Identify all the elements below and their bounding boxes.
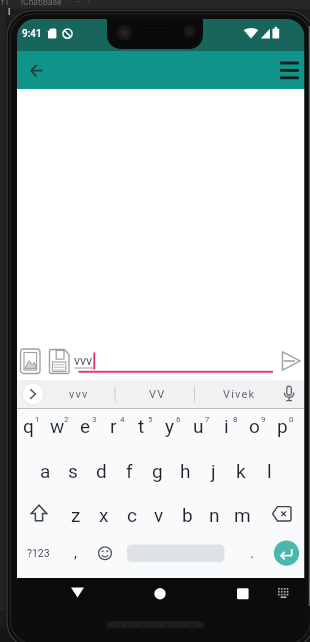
button[interactable]: f — [115, 456, 143, 486]
button[interactable]: m — [228, 500, 256, 530]
button[interactable]: s — [59, 456, 87, 486]
button[interactable]: r — [99, 411, 127, 441]
staticText: b — [182, 504, 193, 526]
button[interactable] — [268, 498, 298, 530]
staticText: r — [110, 415, 117, 437]
staticText: l — [267, 460, 272, 482]
button[interactable]: i — [212, 411, 240, 441]
staticText: 9:41 — [22, 28, 42, 40]
staticText: p — [277, 415, 288, 437]
button[interactable]: y — [155, 411, 183, 441]
button[interactable]: c — [118, 500, 146, 530]
staticText: q — [23, 415, 34, 437]
staticText: h — [180, 460, 191, 482]
button[interactable]: o — [240, 411, 268, 441]
button[interactable]: vvv — [55, 383, 103, 405]
staticText: t — [138, 415, 145, 437]
button[interactable]: p — [268, 411, 296, 441]
button[interactable] — [272, 582, 296, 604]
button[interactable] — [226, 580, 262, 605]
button[interactable] — [18, 345, 43, 375]
button[interactable] — [142, 580, 178, 605]
button[interactable]: x — [90, 500, 118, 530]
button[interactable] — [46, 345, 72, 375]
button[interactable]: k — [227, 456, 255, 486]
button[interactable] — [24, 498, 54, 530]
staticText: e — [80, 415, 91, 437]
staticText: 9 — [261, 415, 266, 424]
staticText: i — [224, 415, 229, 437]
staticText: , — [74, 544, 77, 562]
button[interactable]: n — [200, 500, 228, 530]
button[interactable]: v — [145, 500, 173, 530]
button[interactable]: u — [184, 411, 212, 441]
staticText: a — [40, 460, 51, 482]
staticText: 2 — [64, 415, 69, 424]
button[interactable]: t — [127, 411, 155, 441]
button[interactable]: g — [143, 456, 171, 486]
button[interactable] — [279, 383, 299, 405]
staticText: j — [211, 460, 216, 482]
button[interactable] — [24, 56, 52, 86]
staticText: VV — [149, 388, 166, 401]
button[interactable]: Vivek — [210, 383, 268, 405]
staticText: k — [236, 460, 246, 482]
button[interactable] — [60, 580, 96, 605]
staticText: c — [127, 504, 137, 526]
staticText: vvv — [74, 353, 93, 368]
button[interactable] — [95, 543, 115, 564]
staticText: f — [126, 460, 133, 482]
staticText: . — [250, 544, 254, 562]
staticText: 6 — [176, 415, 181, 424]
staticText: o — [249, 415, 260, 437]
staticText: f i IChat|Base · ·· · — [1, 0, 90, 7]
button[interactable]: d — [87, 456, 115, 486]
button[interactable] — [278, 347, 304, 375]
staticText: w — [50, 415, 65, 437]
staticText: 0 — [289, 415, 294, 424]
button[interactable]: . — [245, 543, 259, 563]
button[interactable]: e — [71, 411, 99, 441]
staticText: g — [152, 460, 163, 482]
staticText: ?123 — [27, 547, 50, 559]
staticText: 7 — [205, 415, 210, 424]
staticText: u — [193, 415, 204, 437]
staticText: z — [71, 504, 81, 526]
staticText: m — [234, 504, 251, 526]
staticText: 1 — [35, 415, 40, 424]
button[interactable]: VV — [133, 383, 181, 405]
staticText: v — [154, 504, 164, 526]
button[interactable] — [274, 56, 304, 86]
staticText: 4 — [120, 415, 125, 424]
button[interactable] — [273, 540, 300, 567]
staticText: 5 — [148, 415, 153, 424]
staticText: s — [68, 460, 78, 482]
button[interactable] — [127, 543, 225, 563]
staticText: n — [209, 504, 220, 526]
button[interactable]: w — [43, 411, 71, 441]
button[interactable]: l — [255, 456, 283, 486]
staticText: y — [165, 415, 174, 437]
staticText: Vivek — [223, 388, 256, 401]
button[interactable]: a — [31, 456, 59, 486]
staticText: 3 — [92, 415, 97, 424]
button[interactable]: , — [68, 543, 82, 563]
staticText: 8 — [233, 415, 238, 424]
button[interactable]: j — [199, 456, 227, 486]
staticText: x — [99, 504, 109, 526]
button[interactable]: q — [14, 411, 42, 441]
button[interactable]: b — [173, 500, 201, 530]
staticText: d — [96, 460, 107, 482]
button[interactable]: ?123 — [22, 543, 55, 563]
button[interactable]: h — [171, 456, 199, 486]
button[interactable] — [22, 383, 44, 405]
button[interactable]: z — [62, 500, 90, 530]
staticText: vvv — [69, 388, 89, 401]
